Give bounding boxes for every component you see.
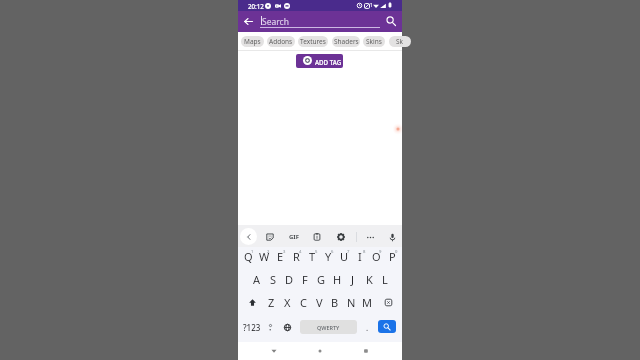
button[interactable]: Y: [320, 245, 336, 267]
staticText: F: [302, 272, 308, 287]
staticText: M: [362, 295, 372, 310]
button[interactable]: H: [329, 268, 345, 290]
button[interactable]: Back: [240, 13, 257, 30]
staticText: Addons: [269, 37, 293, 46]
staticText: L: [382, 272, 388, 287]
staticText: 0: [395, 249, 398, 255]
staticText: Textures: [300, 37, 326, 46]
staticText: 9: [379, 249, 382, 255]
staticText: K: [366, 272, 373, 287]
button[interactable]: ADD TAG: [296, 54, 343, 68]
button[interactable]: Voice input: [384, 229, 400, 245]
button[interactable]: A: [248, 268, 265, 290]
staticText: I: [358, 249, 362, 264]
button[interactable]: ?123: [239, 316, 265, 338]
staticText: ADD TAG: [315, 58, 342, 66]
button[interactable]: F: [297, 268, 313, 290]
button[interactable]: T: [304, 245, 320, 267]
staticText: A: [253, 272, 261, 287]
button[interactable]: X: [279, 291, 295, 313]
button[interactable]: B: [327, 291, 343, 313]
button[interactable]: M: [359, 291, 375, 313]
staticText: Y: [325, 249, 332, 264]
staticText: Shaders: [334, 37, 359, 46]
staticText: 6: [331, 249, 334, 255]
staticText: T: [309, 249, 316, 264]
button[interactable]: Change language: [280, 316, 294, 338]
button[interactable]: Stickers: [262, 229, 278, 245]
button[interactable]: Recent apps: [356, 342, 376, 360]
staticText: R: [293, 249, 300, 264]
button[interactable]: Textures: [298, 36, 328, 47]
button[interactable]: More options: [362, 229, 378, 245]
button[interactable]: Shift: [238, 291, 267, 313]
button[interactable]: J: [345, 268, 361, 290]
button[interactable]: P: [384, 245, 400, 267]
staticText: 2: [267, 249, 270, 255]
button[interactable]: G: [313, 268, 329, 290]
button[interactable]: W: [256, 245, 272, 267]
button[interactable]: GIF: [286, 229, 302, 245]
staticText: 7: [347, 249, 350, 255]
button[interactable]: Shaders: [332, 36, 360, 47]
button[interactable]: Settings: [333, 229, 349, 245]
button[interactable]: Back: [264, 342, 284, 360]
staticText: Sk: [396, 37, 404, 46]
button[interactable]: Addons: [267, 36, 295, 47]
staticText: 1: [251, 249, 254, 255]
staticText: D: [285, 272, 294, 287]
staticText: 20:12: [248, 2, 264, 10]
staticText: E: [277, 249, 284, 264]
staticText: Search: [262, 16, 289, 28]
staticText: ?123: [243, 322, 261, 333]
button[interactable]: Backspace: [375, 291, 402, 313]
button[interactable]: Back: [240, 228, 257, 245]
button[interactable]: Search: [383, 13, 399, 29]
button[interactable]: D: [281, 268, 297, 290]
button[interactable]: R: [288, 245, 304, 267]
staticText: X: [284, 295, 291, 310]
button[interactable]: Q: [240, 245, 256, 267]
button[interactable]: K: [361, 268, 377, 290]
staticText: Skins: [366, 37, 382, 46]
button[interactable]: Z: [264, 291, 279, 313]
button[interactable]: Skins: [363, 36, 385, 47]
button[interactable]: S: [265, 268, 281, 290]
staticText: O: [372, 249, 381, 264]
button[interactable]: U: [336, 245, 352, 267]
button[interactable]: O: [368, 245, 384, 267]
staticText: 5: [315, 249, 318, 255]
button[interactable]: QWERTY: [300, 320, 357, 334]
button[interactable]: V: [311, 291, 327, 313]
button[interactable]: C: [295, 291, 311, 313]
staticText: G: [317, 272, 326, 287]
staticText: W: [259, 249, 270, 264]
staticText: B: [331, 295, 339, 310]
staticText: QWERTY: [317, 324, 340, 331]
button[interactable]: Sk: [389, 36, 411, 47]
staticText: N: [347, 295, 356, 310]
staticText: Z: [268, 295, 275, 310]
staticText: .: [366, 322, 369, 333]
button[interactable]: E: [272, 245, 288, 267]
staticText: 8: [363, 249, 366, 255]
staticText: V: [316, 295, 323, 310]
staticText: P: [389, 249, 396, 264]
button[interactable]: Emoji: [263, 316, 277, 338]
staticText: H: [333, 272, 342, 287]
button[interactable]: Maps: [241, 36, 264, 47]
staticText: J: [351, 272, 355, 287]
staticText: Maps: [244, 37, 261, 46]
staticText: U: [340, 249, 349, 264]
button[interactable]: Search: [378, 320, 396, 333]
button[interactable]: N: [343, 291, 359, 313]
button[interactable]: L: [377, 268, 393, 290]
button[interactable]: Clipboard: [309, 229, 325, 245]
button[interactable]: .: [360, 316, 374, 338]
staticText: C: [300, 295, 307, 310]
staticText: 3: [283, 249, 286, 255]
staticText: S: [270, 272, 277, 287]
button[interactable]: Home: [310, 342, 330, 360]
button[interactable]: I: [352, 245, 368, 267]
staticText: 1: [370, 2, 373, 8]
